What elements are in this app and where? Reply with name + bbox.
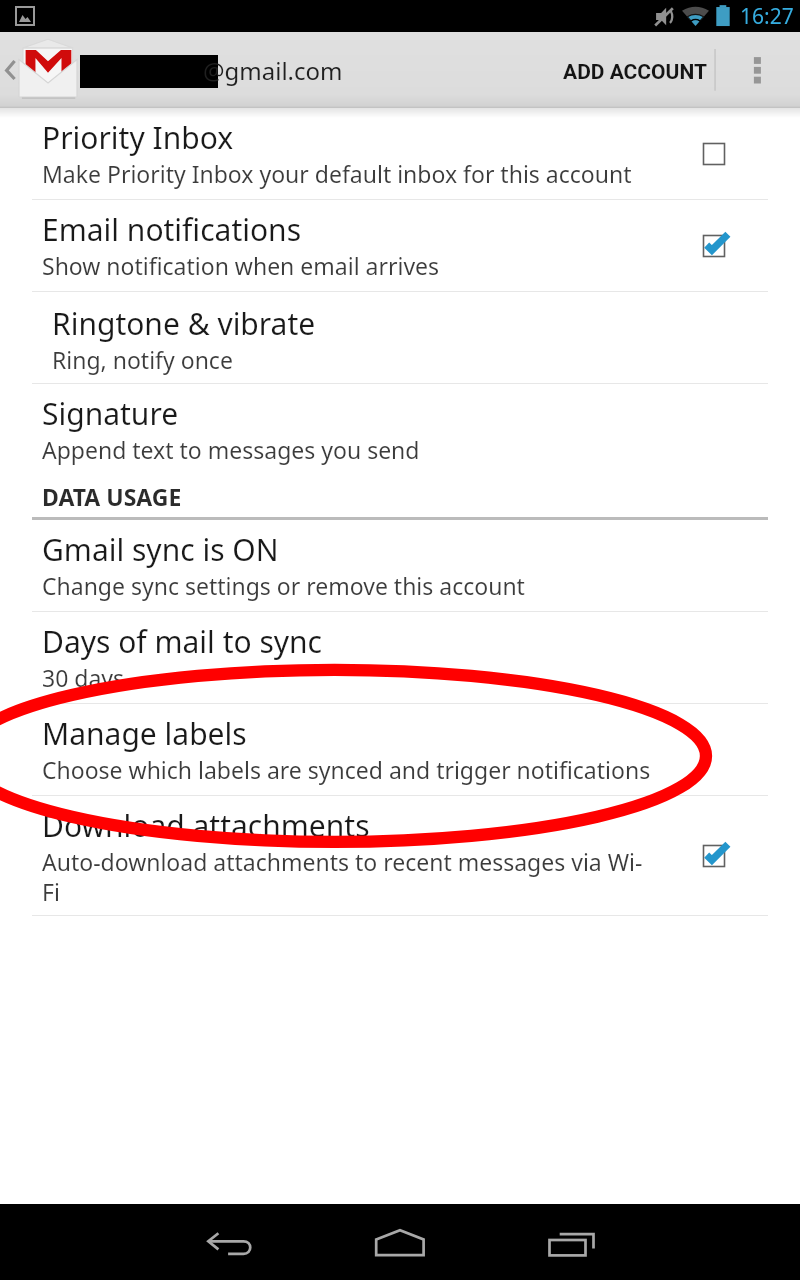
staticText: 16:27: [740, 2, 794, 31]
button[interactable]: Email notifications: [0, 200, 800, 291]
button[interactable]: Back: [176, 1204, 284, 1280]
button[interactable]: Home: [346, 1204, 454, 1280]
button[interactable]: Signature: [0, 384, 800, 475]
staticText: Make Priority Inbox your default inbox f…: [42, 158, 632, 189]
button[interactable]: More options: [716, 32, 800, 108]
staticText: ADD ACCOUNT: [563, 60, 707, 85]
button[interactable]: Navigate up: [0, 32, 90, 108]
staticText: 30 days: [42, 662, 125, 693]
staticText: Gmail sync is ON: [42, 529, 279, 570]
staticText: Email notifications: [42, 209, 302, 250]
button[interactable]: Days of mail to sync: [0, 612, 800, 703]
staticText: Ring, notify once: [52, 344, 233, 375]
button[interactable]: Gmail sync is ON: [0, 520, 800, 611]
staticText: Choose which labels are synced and trigg…: [42, 754, 651, 785]
staticText: Manage labels: [42, 713, 247, 754]
staticText: Priority Inbox: [42, 117, 234, 158]
button[interactable]: ADD ACCOUNT: [551, 34, 719, 110]
button[interactable]: Recent apps: [514, 1204, 622, 1280]
staticText: DATA USAGE: [42, 481, 182, 512]
staticText: Append text to messages you send: [42, 434, 420, 465]
button[interactable]: Manage labels: [0, 704, 800, 795]
staticText: Auto-download attachments to recent mess…: [42, 846, 658, 907]
staticText: Show notification when email arrives: [42, 250, 440, 281]
staticText: Signature: [42, 393, 179, 434]
staticText: @gmail.com: [203, 54, 343, 87]
staticText: Change sync settings or remove this acco…: [42, 570, 525, 601]
button[interactable]: Download attachments: [0, 796, 800, 915]
staticText: Download attachments: [42, 805, 370, 846]
button[interactable]: Priority Inbox: [0, 108, 800, 199]
button[interactable]: Ringtone & vibrate: [0, 292, 800, 383]
staticText: Ringtone & vibrate: [52, 303, 316, 344]
staticText: Days of mail to sync: [42, 621, 323, 662]
